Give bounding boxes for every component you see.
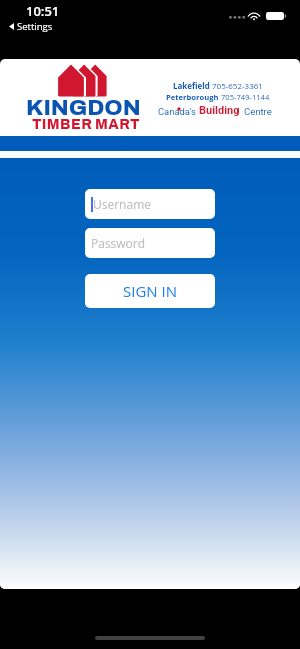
button[interactable]: Username (85, 189, 215, 219)
staticText: TIMBER MART (32, 117, 140, 132)
button[interactable]: SIGN IN (85, 274, 215, 308)
button[interactable]: Back to Settings (9, 20, 53, 33)
staticText: 10:51 (26, 2, 60, 20)
staticText: 705-749-1144 (221, 92, 270, 102)
staticText: Settings (17, 20, 53, 33)
staticText: Centre (244, 106, 272, 117)
staticText: SIGN IN (123, 281, 177, 301)
staticText: Canada's (158, 106, 196, 117)
button[interactable]: Password (85, 228, 215, 258)
staticText: 705-652-3361 (212, 80, 263, 91)
staticText: KINGDON (26, 95, 141, 120)
staticText: Password (91, 235, 146, 251)
staticText: Building (199, 104, 240, 117)
staticText: Username (93, 196, 151, 212)
staticText: Lakefield (173, 80, 212, 91)
staticText: Peterborough (166, 92, 221, 102)
